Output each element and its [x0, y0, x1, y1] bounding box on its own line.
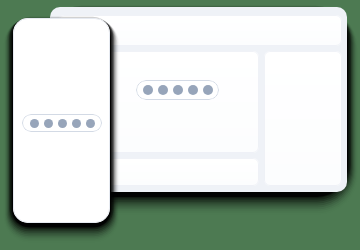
button[interactable]: Loading indicator: [50, 7, 347, 192]
button[interactable]: Loading indicator: [136, 80, 219, 100]
button[interactable]: [58, 15, 342, 46]
button[interactable]: Loading indicator: [13, 18, 110, 223]
button[interactable]: Loading indicator: [22, 114, 102, 132]
button[interactable]: [58, 51, 90, 131]
button[interactable]: [95, 158, 259, 186]
button[interactable]: [95, 51, 259, 153]
